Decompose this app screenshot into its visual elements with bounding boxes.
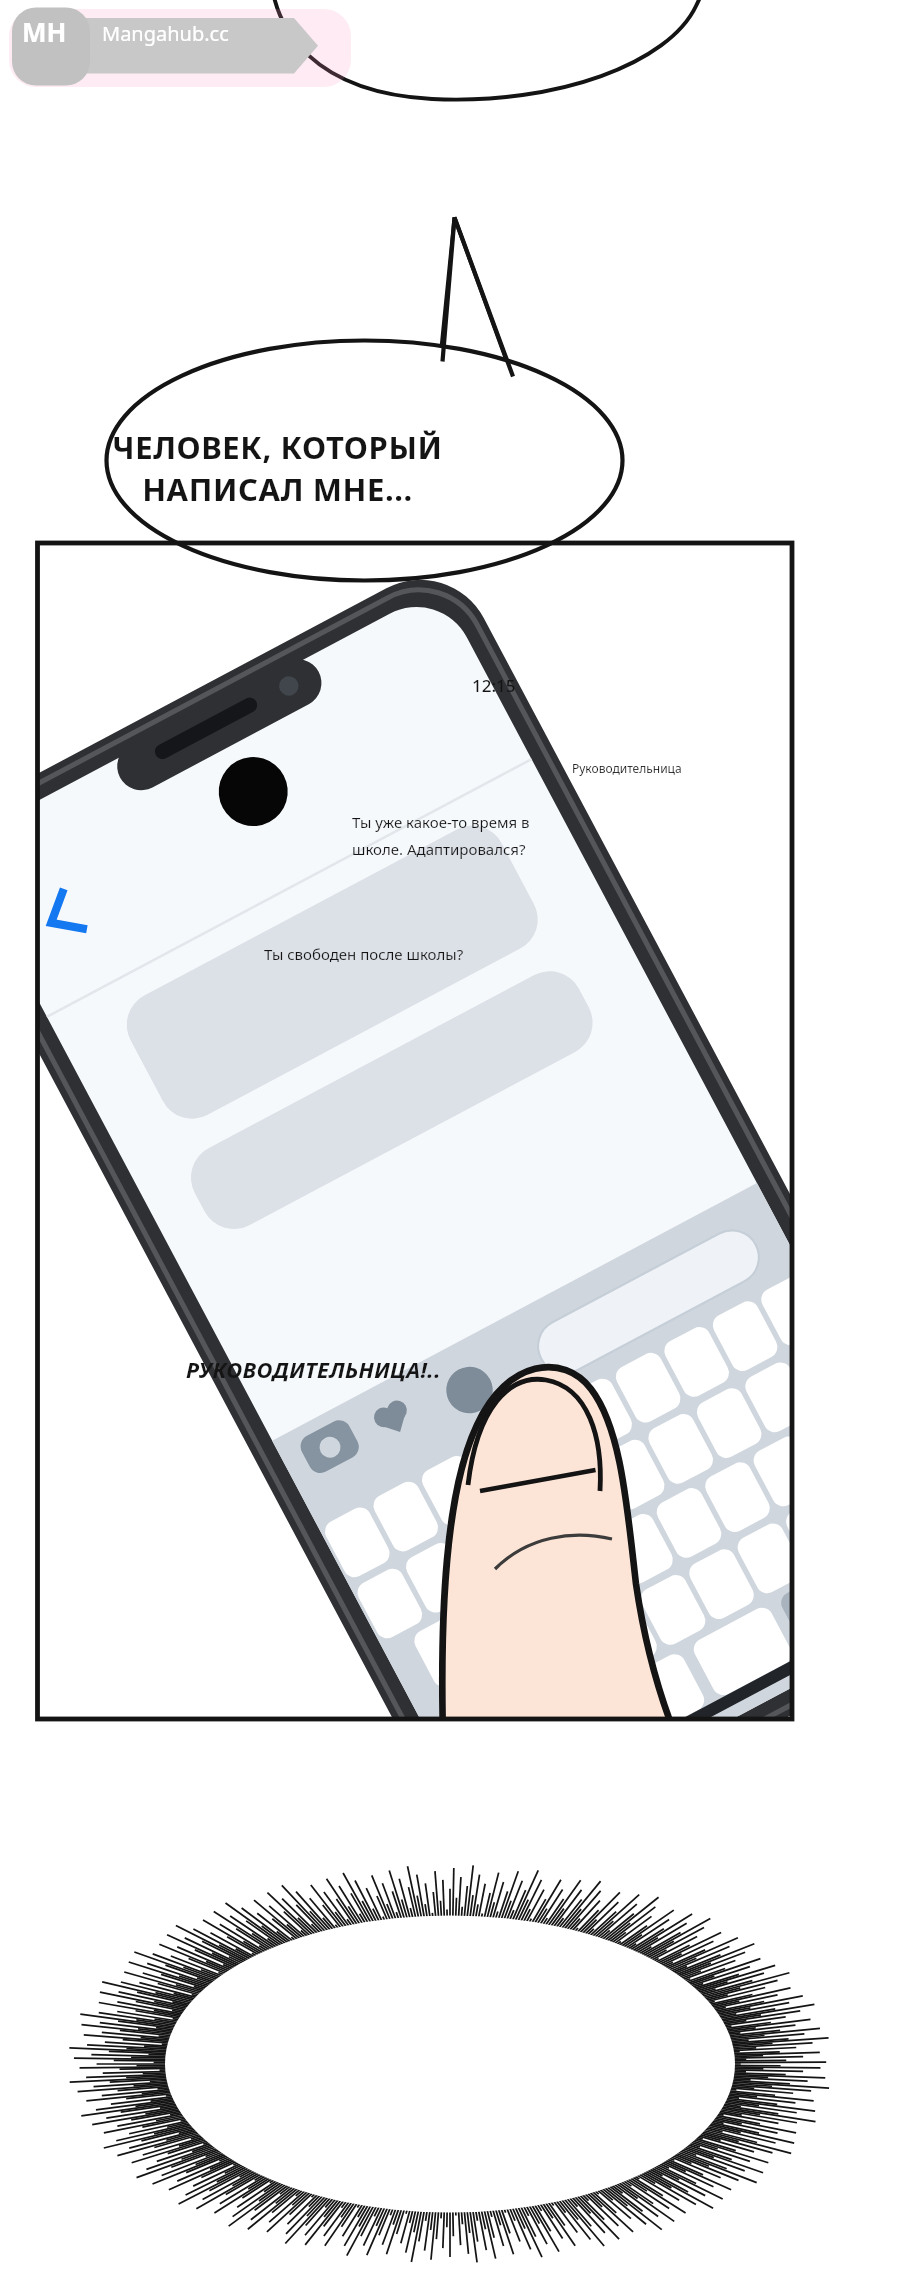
- staticText: Ты свободен после школы?: [264, 944, 464, 964]
- staticText: Руководительница: [572, 760, 682, 776]
- staticText: Mangahub.cc: [102, 20, 229, 47]
- staticText: 12:15: [472, 674, 516, 697]
- staticText: MH: [22, 14, 67, 49]
- staticText: ЧЕЛОВЕК, КОТОРЫЙ НАПИСАЛ МНЕ...: [112, 426, 443, 510]
- staticText: Ты уже какое-то время в школе. Адаптиров…: [352, 812, 530, 860]
- staticText: РУКОВОДИТЕЛЬНИЦА!..: [186, 1354, 441, 1384]
